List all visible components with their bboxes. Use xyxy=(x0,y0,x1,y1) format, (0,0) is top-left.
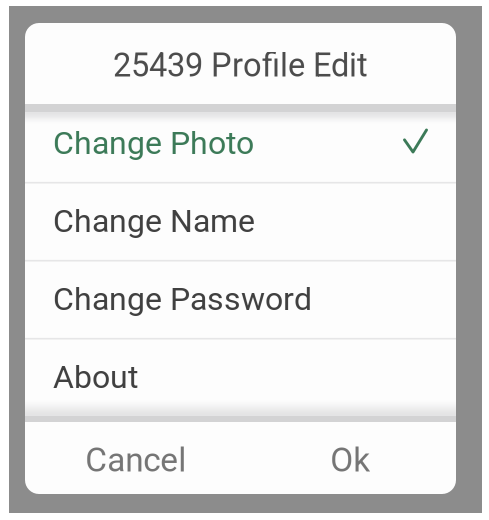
button[interactable]: Ok xyxy=(240,422,456,494)
button[interactable]: Cancel xyxy=(25,422,240,494)
button[interactable]: Change Password xyxy=(25,260,456,338)
button[interactable]: Change Name xyxy=(25,182,456,260)
staticText: Change Password xyxy=(53,280,312,318)
button[interactable]: Change Photo xyxy=(25,104,456,182)
staticText: Cancel xyxy=(85,440,186,480)
staticText: About xyxy=(53,358,138,396)
staticText: Ok xyxy=(330,440,370,480)
staticText: Change Name xyxy=(53,202,255,240)
staticText: 25439 Profile Edit xyxy=(113,46,368,84)
button[interactable]: About xyxy=(25,338,456,416)
staticText: Change Photo xyxy=(53,124,254,162)
